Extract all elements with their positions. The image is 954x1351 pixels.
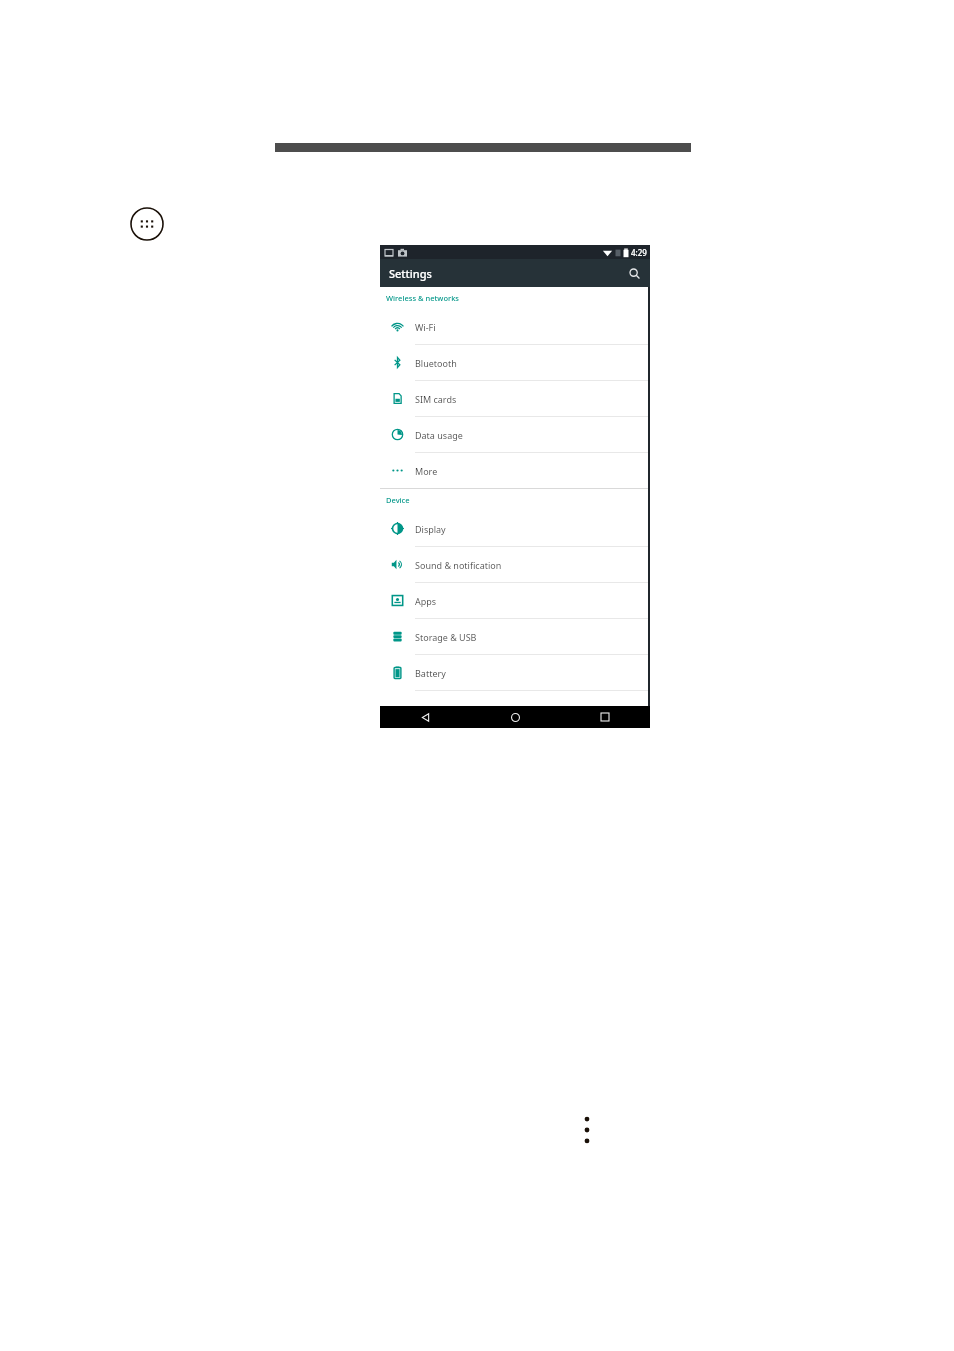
staticText: Wi-Fi <box>415 321 436 333</box>
staticText: Display <box>415 523 446 535</box>
staticText: Apps <box>415 595 437 607</box>
button[interactable]: Bluetooth <box>380 345 650 381</box>
button[interactable]: Wi-Fi <box>380 309 650 345</box>
staticText: Device <box>386 495 410 505</box>
button[interactable]: Battery <box>380 655 650 691</box>
button[interactable]: Sound & notification <box>380 547 650 583</box>
button[interactable]: Storage & USB <box>380 619 650 655</box>
button[interactable]: All apps <box>129 206 165 242</box>
button[interactable]: Data usage <box>380 417 650 453</box>
staticText: 4:29 <box>631 247 647 258</box>
staticText: Settings <box>389 266 432 281</box>
button[interactable]: Home <box>470 706 560 728</box>
staticText: More <box>415 465 438 477</box>
button[interactable]: SIM cards <box>380 381 650 417</box>
button[interactable]: Apps <box>380 583 650 619</box>
staticText: SIM cards <box>415 393 457 405</box>
button[interactable]: Back <box>380 706 470 728</box>
button[interactable]: More options <box>578 1114 596 1146</box>
button[interactable]: Recent apps <box>560 706 650 728</box>
staticText: Wireless & networks <box>386 293 459 303</box>
button[interactable]: Search <box>624 263 644 283</box>
button[interactable]: Display <box>380 511 650 547</box>
staticText: Data usage <box>415 429 463 441</box>
staticText: Sound & notification <box>415 559 502 571</box>
staticText: Battery <box>415 667 446 679</box>
staticText: Bluetooth <box>415 357 457 369</box>
button[interactable]: More <box>380 453 650 488</box>
staticText: Storage & USB <box>415 631 477 643</box>
